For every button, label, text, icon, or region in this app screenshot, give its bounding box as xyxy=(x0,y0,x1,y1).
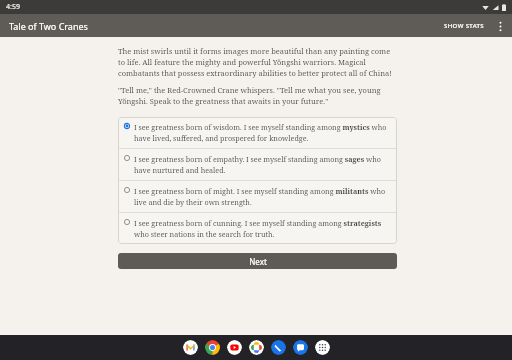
button[interactable]: Next xyxy=(118,253,397,269)
staticText: I see greatness born of empathy. I see m… xyxy=(134,154,390,175)
button[interactable]: Chrome xyxy=(205,340,220,355)
button[interactable]: I see greatness born of cunning. I see m… xyxy=(118,213,397,244)
button[interactable]: Photos xyxy=(249,340,264,355)
button[interactable]: I see greatness born of empathy. I see m… xyxy=(118,149,397,180)
staticText: "Tell me," the Red-Crowned Crane whisper… xyxy=(118,85,397,106)
button[interactable]: YouTube xyxy=(227,340,242,355)
staticText: 4:59 xyxy=(6,2,20,12)
button[interactable]: SHOW STATS xyxy=(439,18,490,34)
staticText: Tale of Two Cranes xyxy=(9,20,88,32)
staticText: I see greatness born of might. I see mys… xyxy=(134,186,390,207)
button[interactable]: I see greatness born of wisdom. I see my… xyxy=(118,117,397,148)
staticText: Next xyxy=(249,256,267,267)
button[interactable]: Phone xyxy=(271,340,286,355)
staticText: SHOW STATS xyxy=(444,22,485,30)
button[interactable]: Gmail xyxy=(183,340,198,355)
button[interactable]: More options xyxy=(490,16,510,36)
button[interactable]: Messages xyxy=(293,340,308,355)
staticText: I see greatness born of wisdom. I see my… xyxy=(134,122,390,143)
button[interactable]: I see greatness born of might. I see mys… xyxy=(118,181,397,212)
staticText: I see greatness born of cunning. I see m… xyxy=(134,218,390,239)
staticText: The mist swirls until it forms images mo… xyxy=(118,46,397,78)
button[interactable]: All apps xyxy=(315,340,330,355)
